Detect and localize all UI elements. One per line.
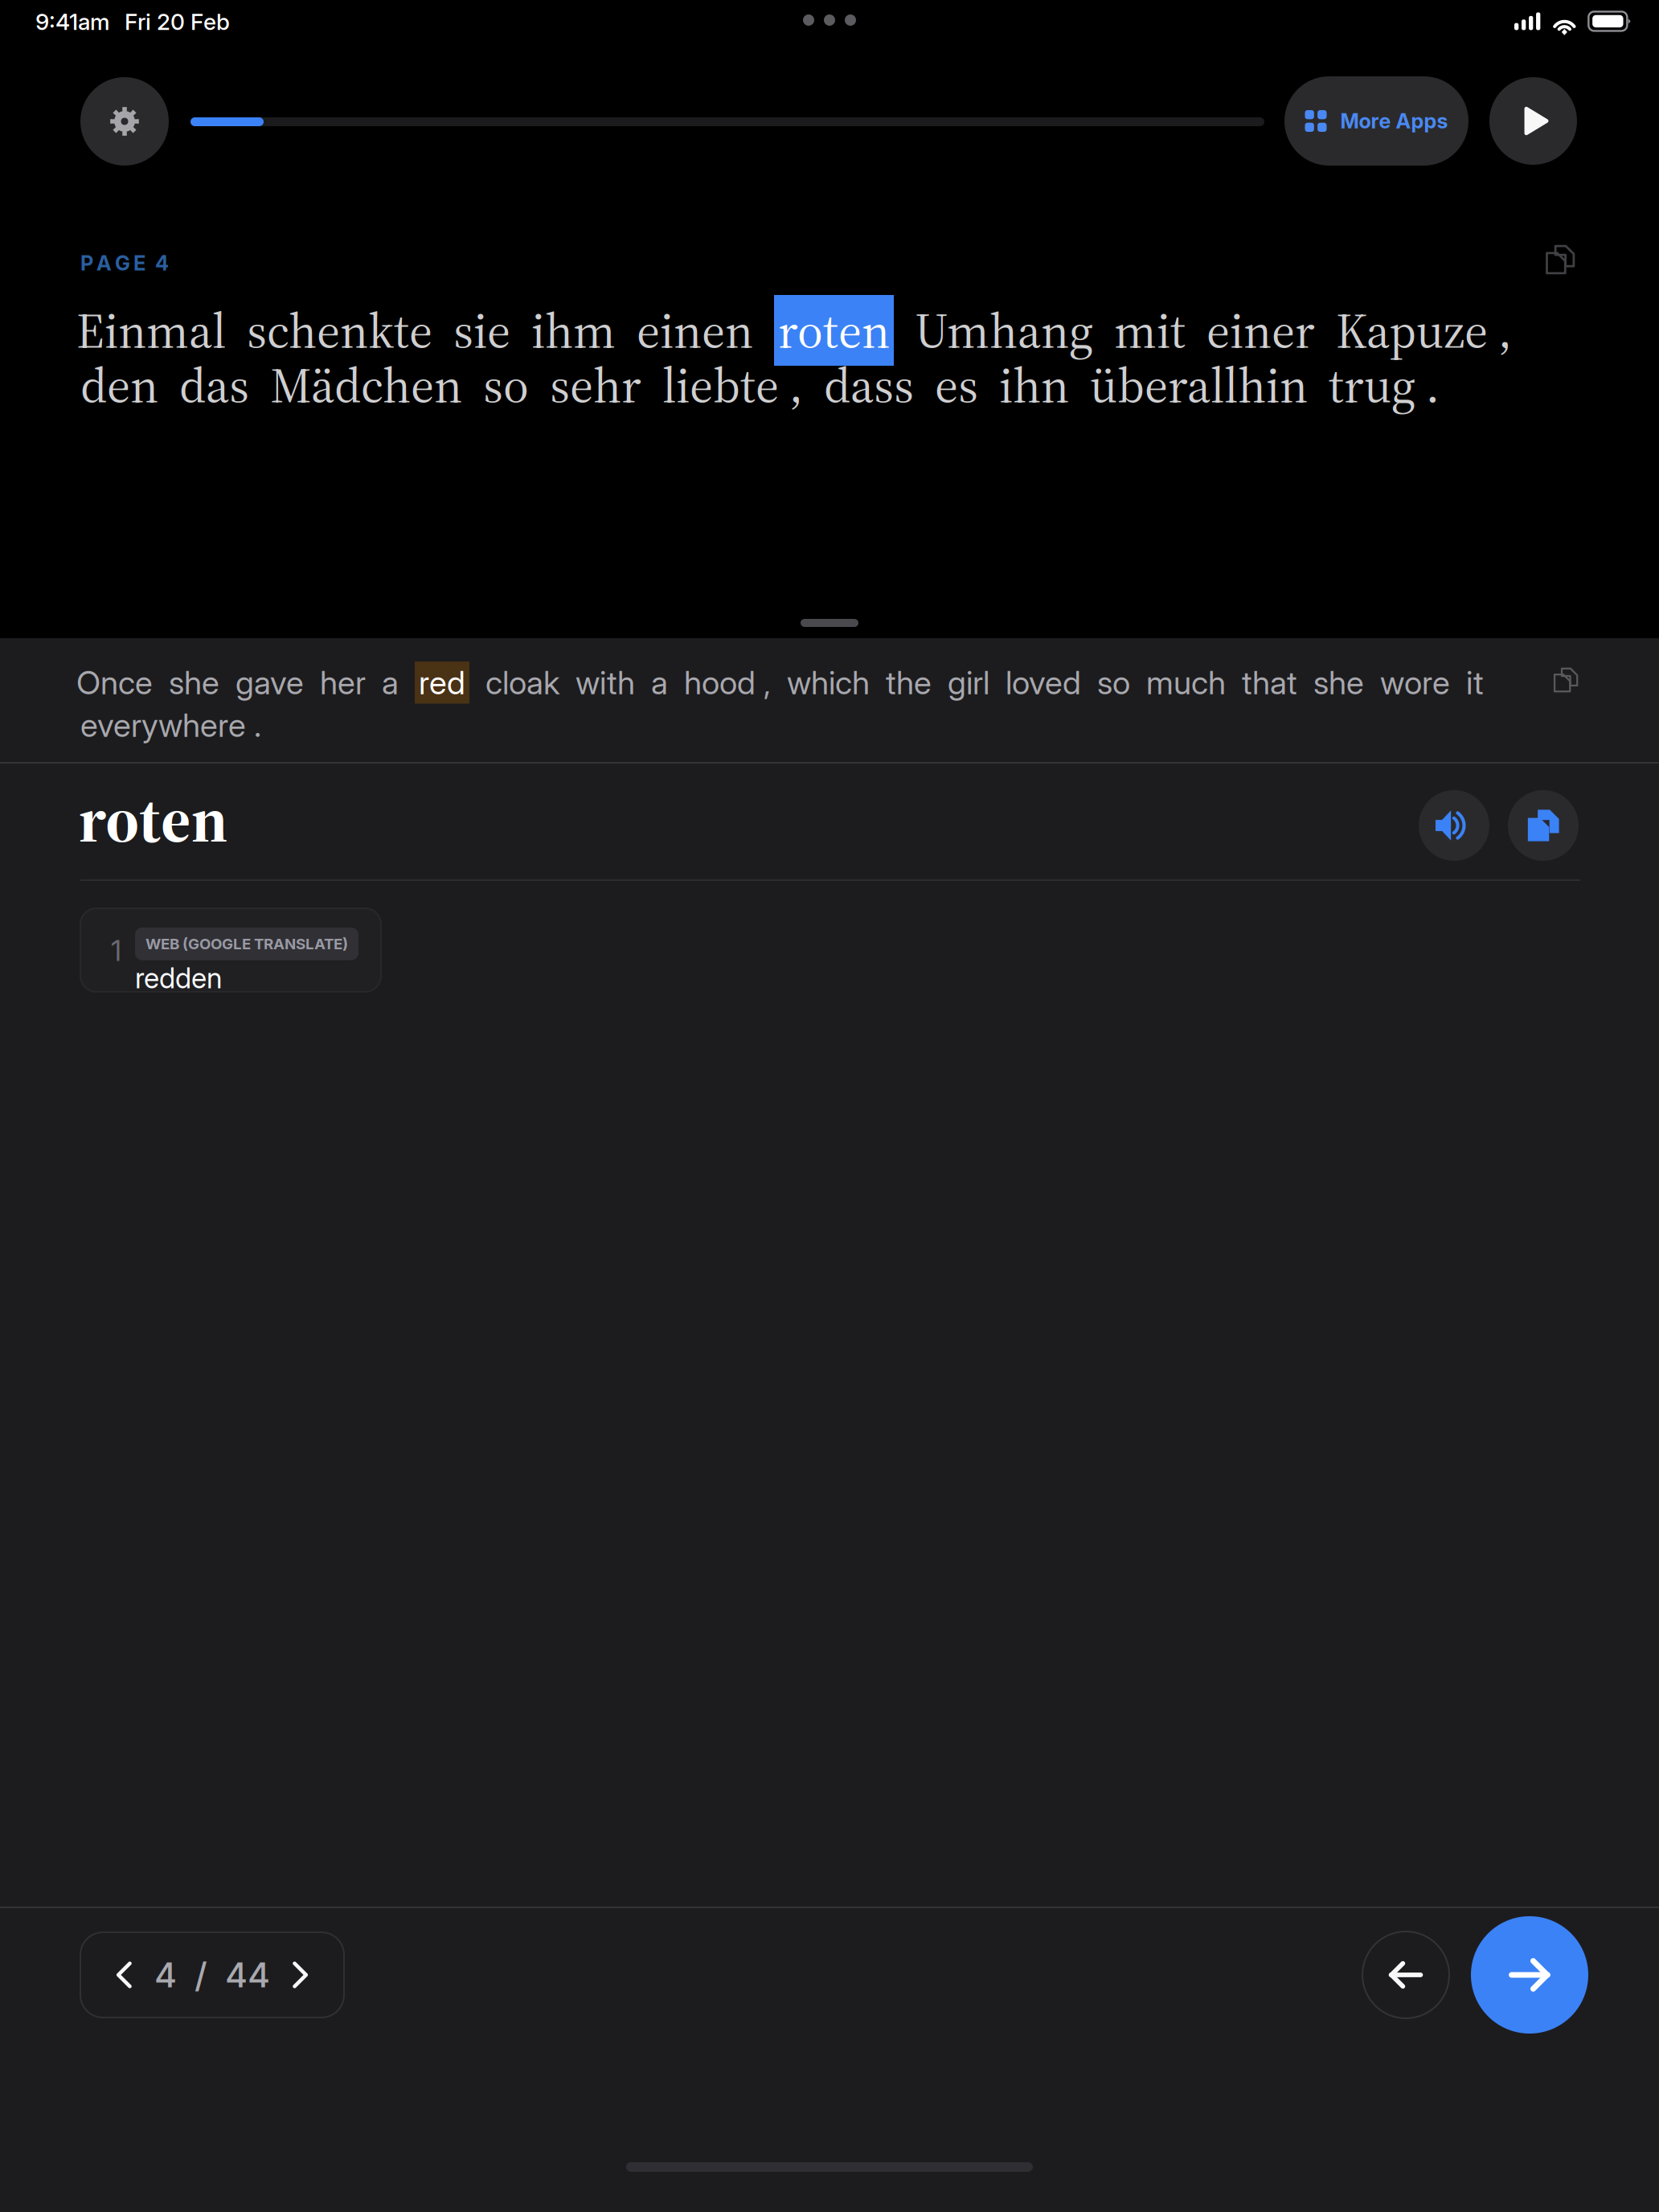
staticText: roten [79, 775, 227, 863]
button[interactable]: Pronounce word [1419, 790, 1489, 861]
staticText: den das Mädchen so sehr liebte , dass es… [80, 351, 1440, 419]
staticText: red [419, 663, 465, 702]
staticText: 9:41am [35, 8, 110, 35]
staticText: Umhang mit einer Kapuze , [894, 297, 1512, 364]
button[interactable]: Next page [270, 1932, 331, 2017]
staticText: WEB (GOOGLE TRANSLATE) [145, 935, 348, 953]
button[interactable]: Copy translation [1553, 667, 1579, 693]
staticText: cloak with a hood , which the girl loved… [469, 663, 1484, 702]
button[interactable]: Copy source text [1545, 244, 1575, 275]
button[interactable]: Previous word [1362, 1931, 1449, 2018]
staticText: Fri 20 Feb [125, 8, 230, 35]
staticText: More Apps [1340, 109, 1448, 133]
button[interactable]: Next word [1471, 1916, 1588, 2034]
button[interactable]: Play [1489, 77, 1577, 165]
staticText: Einmal schenkte sie ihm einen [76, 297, 774, 364]
staticText: 1 [111, 934, 121, 968]
staticText: Once she gave her a [76, 663, 415, 702]
staticText: redden [135, 961, 222, 995]
staticText: P A G E 4 [80, 251, 169, 275]
button[interactable]: Copy word [1508, 790, 1579, 861]
staticText: roten [778, 297, 890, 364]
button[interactable]: Settings [80, 77, 169, 166]
button[interactable]: More Apps [1284, 76, 1469, 166]
button[interactable]: Previous page [93, 1932, 154, 2017]
staticText: everywhere . [80, 706, 261, 745]
staticText: 4 / 44 [154, 1954, 270, 1996]
